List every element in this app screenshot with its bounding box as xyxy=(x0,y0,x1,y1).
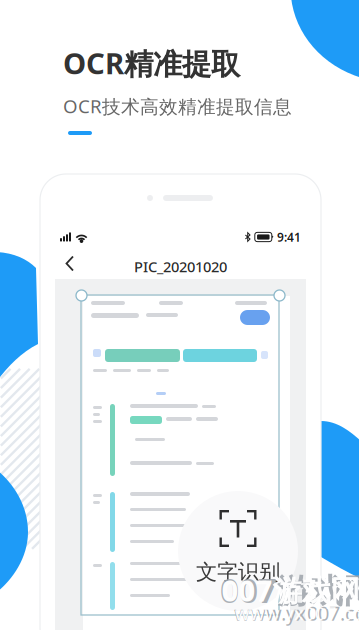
button[interactable]: 文字识别 xyxy=(178,491,298,611)
button[interactable]: Back xyxy=(61,255,81,272)
staticText: OCR技术高效精准提取信息 xyxy=(63,94,292,118)
staticText: www.yx007.com xyxy=(235,601,359,625)
staticText: 文字识别 xyxy=(196,559,280,585)
staticText: www.yx007.com xyxy=(234,600,359,626)
staticText: OCR精准提取 xyxy=(63,43,240,82)
staticText: 007游戏网 xyxy=(220,568,359,612)
staticText: PIC_20201020 xyxy=(134,257,227,276)
staticText: 9:41 xyxy=(277,229,301,245)
staticText: 007游戏网 xyxy=(221,570,359,609)
